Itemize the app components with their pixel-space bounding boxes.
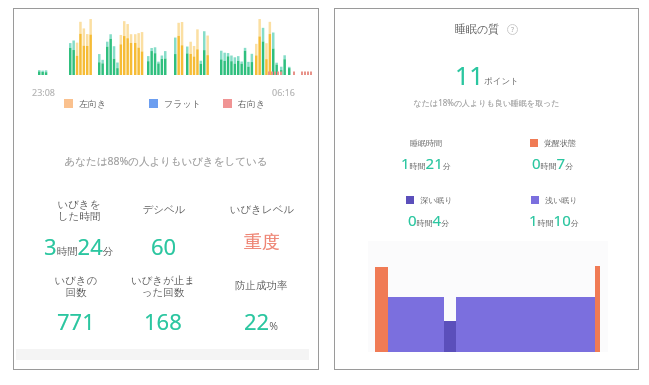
staticText: 覚醒状態 xyxy=(544,138,576,148)
staticText: いびきの 回数 xyxy=(26,274,126,299)
staticText: あなたは88%の人よりもいびきをしている xyxy=(13,154,319,168)
staticText: 0時間7分 xyxy=(532,153,574,173)
staticText: デシベル xyxy=(114,203,214,216)
staticText: 重度 xyxy=(244,231,280,254)
staticText: いびきレベル xyxy=(212,203,312,216)
staticText: 0時間4分 xyxy=(408,210,450,230)
staticText: 11 xyxy=(455,58,484,92)
staticText: いびきが止ま った回数 xyxy=(113,274,213,299)
staticText: 3時間24分 xyxy=(44,231,114,261)
staticText: 23:08 xyxy=(32,86,56,98)
staticText: 1時間10分 xyxy=(529,210,579,230)
staticText: フラット xyxy=(164,98,201,109)
staticText: 60 xyxy=(151,231,177,261)
staticText: ? xyxy=(511,25,515,35)
button[interactable]: ヘルプ xyxy=(507,24,518,35)
staticText: 深い眠り xyxy=(420,195,453,205)
staticText: 左向き xyxy=(79,98,107,109)
staticText: 右向き xyxy=(238,98,266,109)
staticText: 睡眠時間 xyxy=(410,138,442,148)
staticText: ポイント xyxy=(484,76,519,87)
staticText: 1時間21分 xyxy=(401,153,451,173)
staticText: 06:16 xyxy=(272,86,296,98)
staticText: なたは18%の人よりも良い睡眠を取った xyxy=(334,97,639,108)
staticText: 睡眠の質 xyxy=(455,22,500,36)
staticText: 22% xyxy=(244,306,278,336)
staticText: 浅い眠り xyxy=(545,195,578,205)
staticText: いびきを した時間 xyxy=(29,198,129,223)
staticText: 771 xyxy=(57,306,95,336)
staticText: 防止成功率 xyxy=(211,279,311,292)
staticText: 168 xyxy=(144,306,182,336)
